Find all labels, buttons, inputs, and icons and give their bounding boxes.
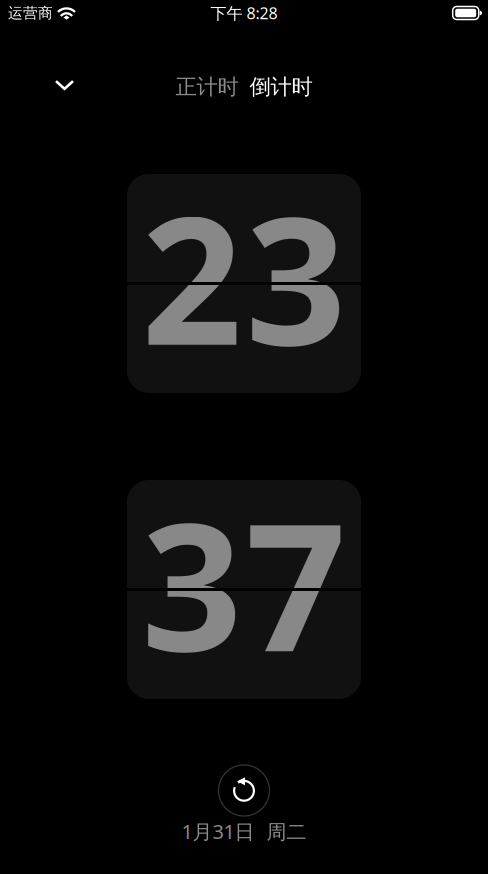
staticText: 正计时	[175, 74, 238, 100]
button[interactable]: 倒计时	[244, 65, 318, 109]
button[interactable]: 正计时	[170, 65, 244, 109]
staticText: 1月31日 周二	[181, 818, 306, 845]
staticText: 下午 8:28	[210, 2, 277, 24]
staticText: 倒计时	[249, 74, 312, 100]
staticText: 23	[141, 160, 346, 393]
button[interactable]: Reset timer	[218, 765, 269, 816]
button[interactable]: Collapse	[41, 63, 89, 111]
staticText: 运营商	[8, 4, 53, 22]
staticText: 37	[141, 466, 346, 699]
